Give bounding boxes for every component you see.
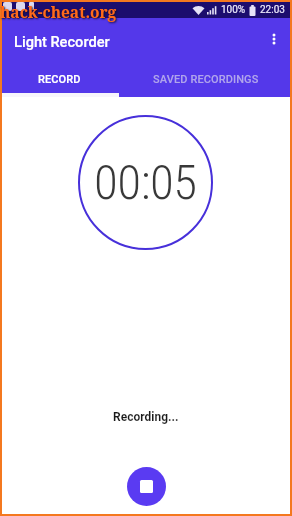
- staticText: 100%: [221, 4, 246, 16]
- staticText: 22:03: [260, 4, 285, 16]
- staticText: SAVED RECORDINGS: [153, 73, 259, 86]
- button[interactable]: RECORD: [0, 62, 119, 97]
- button[interactable]: [127, 467, 166, 506]
- staticText: Recording...: [113, 410, 179, 424]
- staticText: Light Recorder: [14, 33, 110, 50]
- button[interactable]: SAVED RECORDINGS: [119, 62, 292, 97]
- staticText: 00:05: [94, 154, 197, 211]
- button[interactable]: [262, 27, 286, 51]
- staticText: hack-cheat.org: [0, 1, 117, 22]
- staticText: RECORD: [38, 73, 81, 86]
